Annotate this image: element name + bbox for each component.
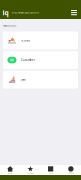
staticText: Favourites (3, 24, 16, 27)
staticText: Interview Questions (11, 11, 38, 14)
staticText: About (69, 172, 73, 174)
staticText: Topics (48, 172, 53, 174)
button[interactable]: Home (0, 165, 20, 175)
button[interactable]: Favourites (20, 165, 40, 175)
button[interactable]: Topics (40, 165, 61, 175)
button[interactable]: TestNG (3, 31, 78, 49)
staticText: Favourites (26, 172, 34, 174)
button[interactable]: Menu (69, 9, 78, 17)
staticText: Java (21, 78, 25, 81)
staticText: Cucumber (21, 58, 35, 62)
staticText: Home (8, 172, 12, 174)
button[interactable]: Java (3, 70, 78, 88)
button[interactable]: About (61, 165, 81, 175)
staticText: TestNG (21, 39, 30, 42)
button[interactable]: Cucumber (3, 51, 78, 69)
staticText: iq (2, 8, 8, 17)
